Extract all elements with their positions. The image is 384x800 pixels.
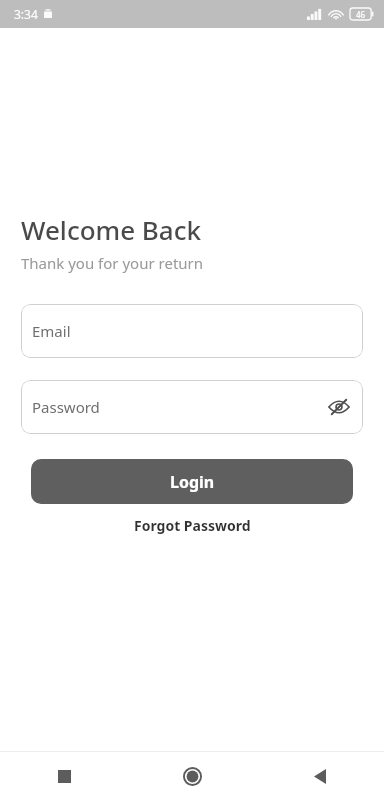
button[interactable]: Show password	[324, 392, 354, 422]
button[interactable]: Back	[256, 752, 384, 800]
staticText: Login	[170, 471, 215, 493]
button[interactable]: Recent apps	[0, 752, 128, 800]
button[interactable]: Password	[21, 380, 363, 434]
button[interactable]: Email	[21, 304, 363, 358]
staticText: Thank you for your return	[21, 253, 204, 273]
button[interactable]: Home	[128, 752, 256, 800]
staticText: Email	[32, 321, 71, 341]
staticText: Welcome Back	[21, 212, 202, 247]
staticText: Forgot Password	[134, 516, 251, 535]
button[interactable]: Forgot Password	[126, 512, 259, 539]
button[interactable]: Login	[31, 459, 353, 504]
staticText: 46	[356, 9, 366, 20]
staticText: 3:34	[14, 6, 38, 22]
staticText: Password	[32, 397, 100, 417]
